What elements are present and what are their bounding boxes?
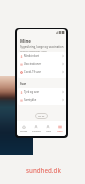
staticText: Sundhed: [32, 130, 41, 133]
staticText: Vis alt: [38, 115, 45, 118]
button[interactable]: Forside: [17, 121, 30, 136]
button[interactable]: Mine: [42, 121, 54, 136]
staticText: Medicinkort: [24, 54, 40, 58]
staticText: Covid-19 svar: [24, 70, 41, 74]
staticText: Mine: [46, 130, 51, 133]
button[interactable]: Vis alt: [35, 113, 48, 119]
staticText: sundhed.dk: [26, 166, 61, 174]
button[interactable]: Medicinkort: [18, 52, 66, 60]
staticText: Forside: [20, 130, 28, 133]
staticText: Samtykke: [24, 98, 37, 102]
staticText: Svar: [20, 82, 27, 86]
button[interactable]: Sundhed: [30, 121, 42, 136]
staticText: Senest opdateret i dag: [20, 49, 47, 52]
staticText: Menu: [57, 130, 63, 133]
button[interactable]: Samtykke: [18, 96, 66, 104]
staticText: Mine: [20, 38, 31, 44]
button[interactable]: Tjek og svar: [18, 88, 66, 96]
staticText: Tjek og svar: [24, 90, 40, 94]
staticText: Vaccinationer: [24, 62, 42, 66]
button[interactable]: Covid-19 svar: [18, 68, 66, 76]
staticText: Sygesikring, laege og vaccination: [20, 45, 64, 49]
button[interactable]: Vaccinationer: [18, 60, 66, 68]
button[interactable]: Menu: [54, 121, 66, 136]
